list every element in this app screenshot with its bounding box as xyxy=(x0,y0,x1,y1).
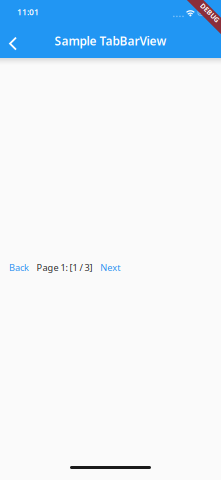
staticText: Next xyxy=(100,261,120,274)
staticText: Page 1: [1 / 3] xyxy=(37,261,93,274)
staticText: DEBUG xyxy=(198,8,221,17)
button[interactable]: Next xyxy=(100,261,120,274)
staticText: Sample TabBarView xyxy=(54,33,166,49)
button[interactable]: Back xyxy=(0,24,26,58)
staticText: 11:01 xyxy=(17,6,39,18)
button[interactable]: Back xyxy=(9,261,29,274)
staticText: Back xyxy=(9,261,29,274)
